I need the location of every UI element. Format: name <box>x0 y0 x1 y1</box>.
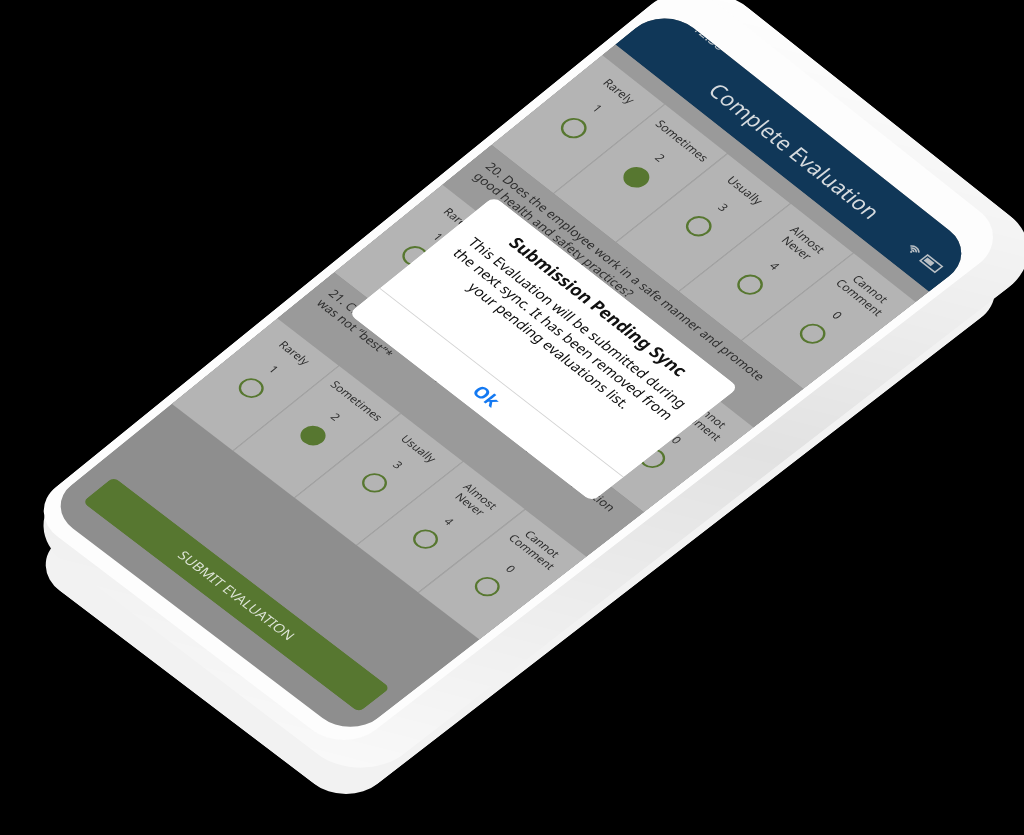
button[interactable]: Sometimes <box>142 350 223 495</box>
staticText: 2 <box>179 610 186 626</box>
button[interactable]: Cannot Comment <box>390 572 472 717</box>
staticText: 21. Choose a reason why the answer to th… <box>74 504 458 537</box>
button[interactable]: Usually <box>224 350 306 495</box>
staticText: 0 <box>428 193 435 209</box>
button[interactable]: Cannot Comment <box>390 140 472 285</box>
button[interactable]: Sometimes <box>142 572 223 717</box>
staticText: 1 <box>97 610 104 626</box>
button[interactable]: Ok <box>104 479 428 521</box>
staticText: This Evaluation will be submitted during… <box>124 367 408 425</box>
staticText: Cannot Comment <box>403 150 459 181</box>
staticText: Cannot Comment <box>403 582 459 613</box>
button[interactable]: Rarely <box>60 350 141 495</box>
staticText: Submission Pending Sync <box>126 338 406 363</box>
button[interactable]: Cannot Comment <box>390 350 472 495</box>
button[interactable]: Rarely <box>60 572 141 717</box>
staticText: 20. Does the employee work in a safe man… <box>74 294 458 327</box>
button[interactable]: Almost Never <box>307 350 389 495</box>
button[interactable]: Usually <box>224 572 306 717</box>
staticText: Sometimes <box>151 360 215 376</box>
staticText: Cannot Comment <box>403 360 459 391</box>
staticText: Almost Never <box>328 360 368 391</box>
staticText: 2 <box>179 388 186 404</box>
staticText: Usually <box>245 360 286 376</box>
staticText: Sometimes <box>151 582 215 598</box>
button[interactable]: Almost Never <box>307 140 389 285</box>
staticText: 3 <box>262 388 269 404</box>
staticText: 3 <box>262 610 269 626</box>
staticText: Usually <box>245 582 286 598</box>
button[interactable]: Almost Never <box>307 572 389 717</box>
